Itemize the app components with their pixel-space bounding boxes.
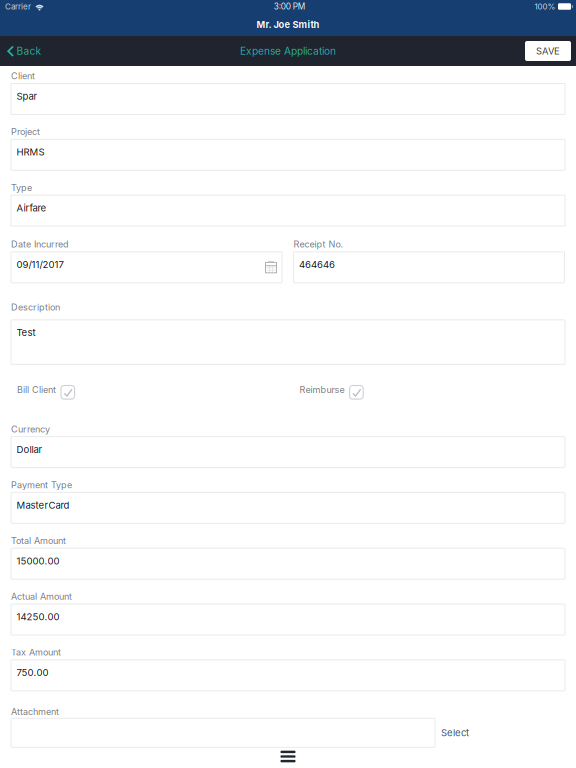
staticText: 3:00 PM bbox=[274, 1, 305, 11]
staticText: Back bbox=[16, 45, 41, 57]
staticText: Select bbox=[441, 727, 469, 739]
staticText: 09/11/2017 bbox=[16, 259, 63, 270]
staticText: Client bbox=[11, 70, 35, 81]
staticText: Dollar bbox=[16, 444, 42, 455]
staticText: Reimburse bbox=[300, 384, 345, 395]
staticText: Spar bbox=[16, 90, 37, 102]
staticText: Receipt No. bbox=[293, 239, 343, 250]
button[interactable]: Menu bbox=[272, 745, 304, 767]
staticText: Attachment bbox=[11, 706, 59, 717]
staticText: HRMS bbox=[16, 146, 44, 158]
staticText: Description bbox=[11, 302, 60, 313]
staticText: Actual Amount bbox=[11, 591, 72, 602]
staticText: Expense Application bbox=[240, 45, 336, 57]
staticText: MasterCard bbox=[16, 499, 69, 511]
staticText: 14250.00 bbox=[16, 611, 59, 623]
staticText: Test bbox=[16, 327, 35, 338]
staticText: Payment Type bbox=[11, 479, 72, 490]
staticText: 100% bbox=[534, 2, 555, 11]
staticText: Type bbox=[11, 182, 32, 193]
button[interactable]: Bill Client bbox=[17, 383, 75, 398]
staticText: 464646 bbox=[299, 259, 335, 270]
staticText: SAVE bbox=[536, 45, 560, 57]
staticText: Airfare bbox=[16, 202, 46, 214]
staticText: Tax Amount bbox=[11, 647, 61, 658]
staticText: Bill Client bbox=[17, 384, 56, 395]
staticText: Currency bbox=[11, 424, 50, 435]
staticText: Project bbox=[11, 126, 40, 137]
staticText: Mr. Joe Smith bbox=[256, 19, 319, 30]
staticText: Date Incurred bbox=[11, 239, 69, 250]
button[interactable]: SAVE bbox=[525, 41, 571, 61]
staticText: 15000.00 bbox=[16, 555, 59, 567]
button[interactable]: Select bbox=[441, 718, 469, 747]
staticText: Total Amount bbox=[11, 535, 66, 546]
staticText: Carrier bbox=[5, 2, 31, 11]
button[interactable]: Back bbox=[0, 36, 47, 66]
button[interactable]: Reimburse bbox=[300, 383, 363, 398]
staticText: 750.00 bbox=[16, 667, 48, 678]
